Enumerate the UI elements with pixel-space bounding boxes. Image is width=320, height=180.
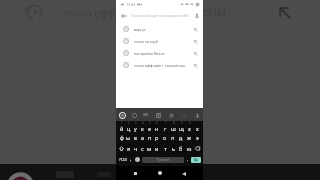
button[interactable]: Voice input	[193, 111, 201, 119]
button[interactable]: Stickers	[130, 111, 138, 119]
staticText: щ	[179, 125, 184, 132]
button[interactable]: д	[177, 132, 185, 143]
button[interactable]: Clipboard	[154, 111, 162, 119]
button[interactable]: Comma	[127, 154, 134, 165]
button[interactable]: 3	[132, 121, 139, 132]
button[interactable]: Shift	[118, 143, 125, 154]
staticText: х	[196, 125, 199, 132]
staticText: 9	[181, 121, 183, 125]
staticText: 0	[189, 121, 191, 125]
staticText: 13:44	[126, 2, 136, 7]
button[interactable]: и	[153, 143, 161, 154]
button[interactable]: л	[169, 132, 177, 143]
button[interactable]: о	[161, 132, 169, 143]
staticText: 8	[173, 121, 175, 125]
button[interactable]: Recents	[132, 170, 139, 177]
button[interactable]: гонка оффлайн с самолётомФОМ	[0, 0, 320, 24]
button[interactable]: Fill query	[192, 38, 199, 45]
button[interactable]: х	[193, 121, 201, 132]
staticText: ц	[127, 125, 131, 132]
staticText: т	[164, 145, 167, 152]
button[interactable]: 9	[177, 121, 185, 132]
button[interactable]: Space	[142, 157, 184, 163]
staticText: ч	[134, 145, 138, 152]
button[interactable]: 1	[118, 121, 125, 132]
button[interactable]: Voice search	[192, 11, 201, 20]
button[interactable]: More	[180, 111, 188, 119]
button[interactable]: Google search	[118, 111, 126, 119]
button[interactable]: ы	[125, 132, 132, 143]
button[interactable]: GIF	[142, 111, 150, 119]
staticText: к	[141, 125, 144, 132]
staticText: Поиск в Google или введите URL	[131, 13, 190, 18]
button[interactable]: настройки Nexus	[116, 47, 203, 59]
staticText: Русский	[157, 158, 170, 162]
button[interactable]: Emoji	[134, 154, 141, 165]
staticText: у	[134, 125, 137, 132]
button[interactable]: я	[125, 143, 132, 154]
staticText: гонка оффлайн с самолётомФОМ	[65, 6, 226, 19]
staticText: и	[155, 145, 159, 152]
staticText: р	[155, 134, 159, 141]
button[interactable]: Home	[156, 169, 164, 177]
button[interactable]: ч	[132, 143, 139, 154]
button[interactable]: Backspace	[193, 143, 201, 154]
staticText: 3	[135, 121, 137, 125]
staticText: л	[171, 134, 175, 141]
staticText: ж	[187, 134, 192, 141]
staticText: .	[187, 156, 189, 163]
button[interactable]: б	[177, 143, 185, 154]
button[interactable]: Settings	[167, 111, 175, 119]
button[interactable]: гонка оффлайн с самолётом	[116, 59, 203, 71]
button[interactable]: Back	[180, 170, 187, 177]
staticText: 1	[121, 121, 123, 125]
staticText: ю	[187, 145, 192, 152]
staticText: б	[179, 145, 183, 152]
staticText: 6	[156, 121, 158, 125]
button[interactable]: ю	[185, 143, 193, 154]
button[interactable]: варгуз	[116, 23, 203, 35]
button[interactable]: а	[139, 132, 146, 143]
button[interactable]: 7	[161, 121, 169, 132]
button[interactable]: 0	[185, 121, 193, 132]
button[interactable]: т	[161, 143, 169, 154]
button[interactable]: ?123	[118, 154, 127, 165]
staticText: я	[127, 145, 131, 152]
button[interactable]: Search	[191, 157, 201, 163]
button[interactable]: 4	[139, 121, 146, 132]
button[interactable]: Fill query	[192, 62, 199, 69]
button[interactable]: э	[193, 132, 201, 143]
button[interactable]: 8	[169, 121, 177, 132]
button[interactable]: ь	[169, 143, 177, 154]
staticText: ф	[120, 134, 124, 141]
staticText: п	[148, 134, 152, 141]
button[interactable]: Back	[119, 11, 128, 20]
button[interactable]: 5	[146, 121, 153, 132]
staticText: в	[134, 134, 137, 141]
staticText: 4	[142, 121, 144, 125]
button[interactable]: с	[139, 143, 146, 154]
staticText: ш	[171, 125, 176, 132]
button[interactable]: Fill query	[192, 50, 199, 57]
staticText: GIF	[143, 113, 149, 117]
staticText: а	[141, 134, 144, 141]
button[interactable]: Fill query	[277, 5, 293, 21]
staticText: варгуз	[134, 27, 192, 32]
button[interactable]: ф	[118, 132, 125, 143]
button[interactable]: гонка за клуб	[116, 35, 203, 47]
staticText: н	[155, 125, 159, 132]
button[interactable]: 6	[153, 121, 161, 132]
button[interactable]: м	[146, 143, 153, 154]
button[interactable]: ж	[185, 132, 193, 143]
button[interactable]: Period	[185, 154, 191, 165]
button[interactable]: 2	[125, 121, 132, 132]
button[interactable]: п	[146, 132, 153, 143]
staticText: 2	[128, 121, 130, 125]
staticText: э	[196, 134, 199, 141]
button[interactable]: Fill query	[192, 26, 199, 33]
button[interactable]: в	[132, 132, 139, 143]
button[interactable]: р	[153, 132, 161, 143]
staticText: м	[147, 145, 152, 152]
staticText: ?123	[119, 157, 127, 162]
